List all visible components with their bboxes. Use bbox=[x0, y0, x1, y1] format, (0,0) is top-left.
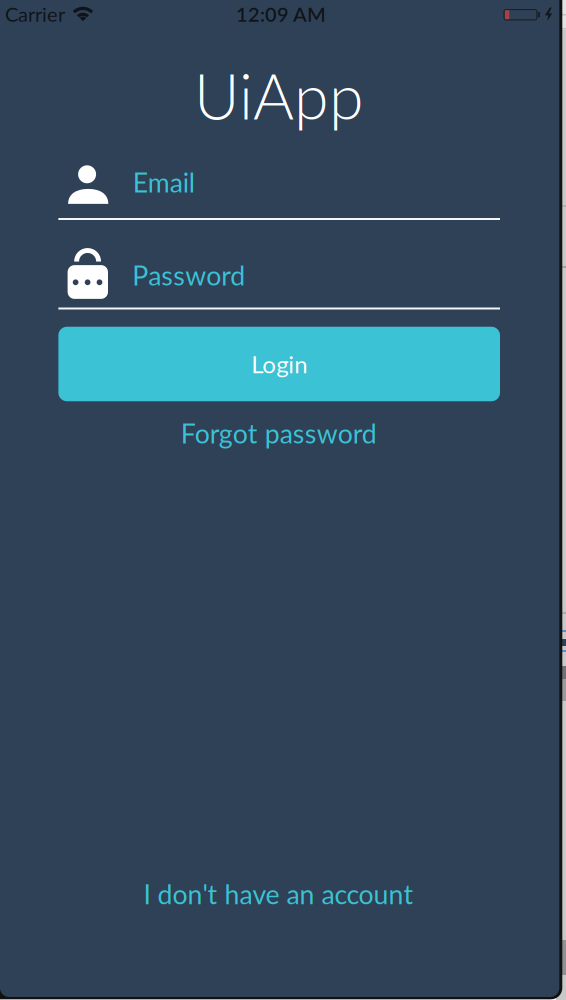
staticText: Password bbox=[132, 260, 245, 291]
staticText: Email bbox=[133, 167, 195, 198]
staticText: Forgot password bbox=[181, 418, 377, 449]
staticText: I don't have an account bbox=[143, 878, 413, 910]
button[interactable]: Forgot password bbox=[181, 418, 377, 449]
button[interactable]: I don't have an account bbox=[143, 878, 413, 910]
staticText: UiApp bbox=[194, 59, 364, 132]
button[interactable]: Login bbox=[58, 327, 500, 401]
button[interactable]: Email bbox=[58, 160, 500, 220]
staticText: 12:09 AM bbox=[236, 2, 326, 26]
button[interactable]: Password bbox=[58, 245, 500, 309]
staticText: Login bbox=[251, 350, 307, 378]
staticText: Carrier bbox=[5, 2, 65, 26]
